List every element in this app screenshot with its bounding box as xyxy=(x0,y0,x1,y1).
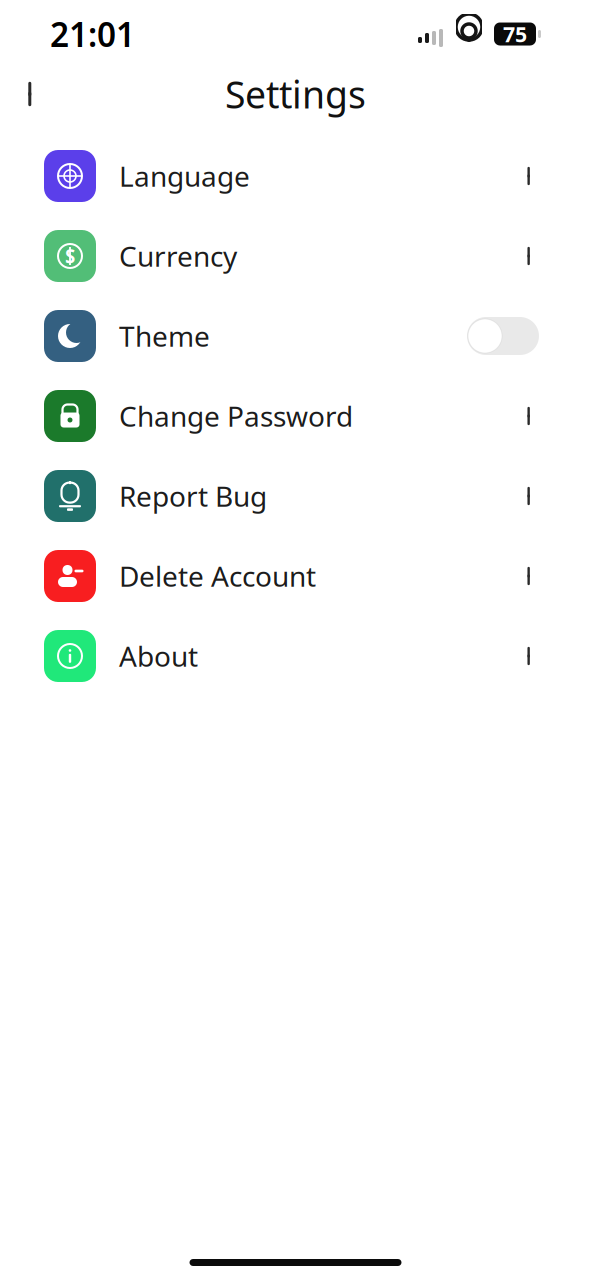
staticText: 75 xyxy=(503,20,527,48)
staticText: Currency xyxy=(119,237,237,275)
staticText: Change Password xyxy=(119,397,353,435)
button[interactable]: Theme toggle xyxy=(467,317,539,355)
button[interactable]: Change Password xyxy=(0,376,591,456)
staticText: Delete Account xyxy=(119,557,316,595)
button[interactable]: Theme xyxy=(0,296,591,376)
staticText: Report Bug xyxy=(119,477,267,515)
staticText: 21:01 xyxy=(50,12,135,56)
staticText: Theme xyxy=(119,317,210,355)
button[interactable]: About xyxy=(0,616,591,696)
button[interactable]: Delete Account xyxy=(0,536,591,616)
button[interactable]: Report Bug xyxy=(0,456,591,536)
staticText: About xyxy=(119,637,198,675)
button[interactable]: S xyxy=(0,216,591,296)
staticText: Settings xyxy=(225,69,366,119)
button[interactable]: Back xyxy=(8,70,56,118)
button[interactable]: Language xyxy=(0,136,591,216)
staticText: Language xyxy=(119,157,250,195)
staticText: S xyxy=(65,244,75,268)
